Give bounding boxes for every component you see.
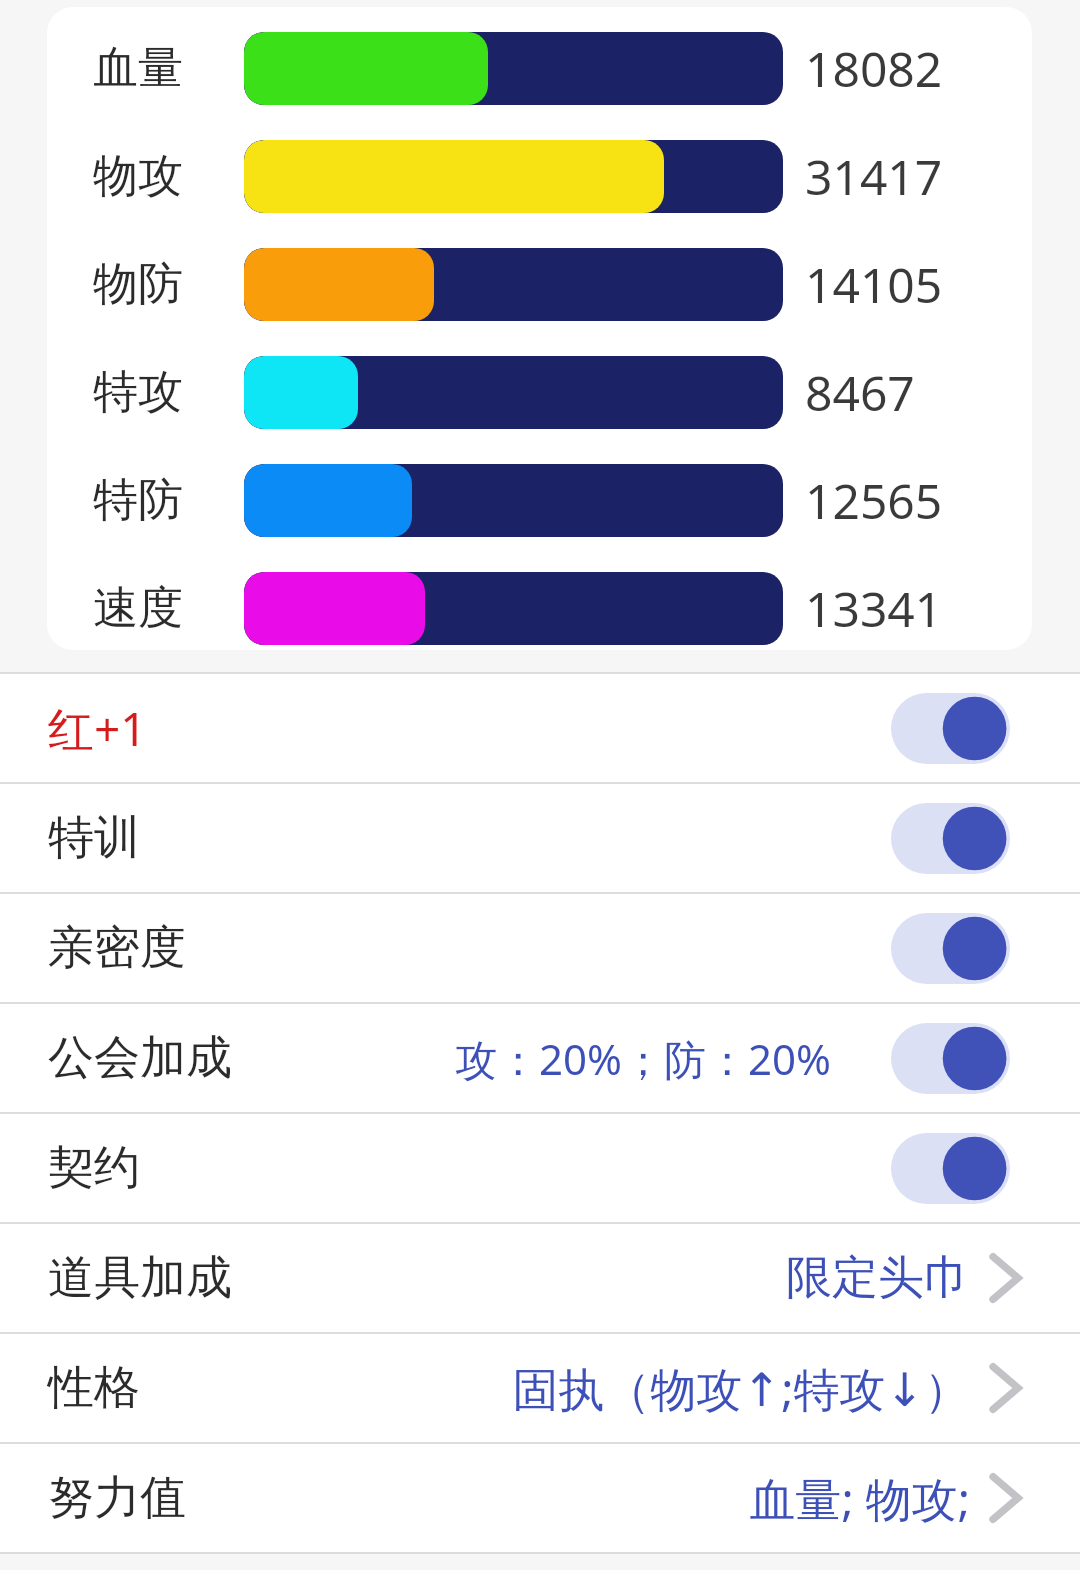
staticText: 亲密度: [48, 919, 186, 977]
staticText: 31417: [805, 144, 943, 209]
other: Open: [988, 1360, 1022, 1416]
staticText: 限定头巾: [786, 1249, 970, 1307]
staticText: 特训: [48, 809, 140, 867]
staticText: 18082: [805, 36, 943, 101]
staticText: 8467: [805, 360, 915, 425]
staticText: 公会加成: [48, 1029, 232, 1087]
button[interactable]: 性格: [0, 1334, 1080, 1442]
staticText: 12565: [805, 468, 943, 533]
staticText: 红+1: [48, 697, 147, 760]
staticText: 性格: [48, 1359, 140, 1417]
button[interactable]: Toggle: [891, 1022, 1010, 1095]
button[interactable]: 契约: [0, 1114, 1080, 1222]
button[interactable]: 公会加成: [0, 1004, 1080, 1112]
staticText: 固执（物攻↑;特攻↓）: [512, 1357, 970, 1420]
staticText: 血量; 物攻;: [749, 1467, 970, 1530]
staticText: 物攻: [93, 148, 183, 205]
button[interactable]: Toggle: [891, 802, 1010, 875]
staticText: 物防: [93, 256, 183, 313]
staticText: 14105: [805, 252, 943, 317]
button[interactable]: 亲密度: [0, 894, 1080, 1002]
button[interactable]: 红+1: [0, 674, 1080, 782]
staticText: 契约: [48, 1139, 140, 1197]
button[interactable]: 努力值: [0, 1444, 1080, 1552]
staticText: 血量: [93, 40, 183, 97]
other: Open: [988, 1470, 1022, 1526]
staticText: 努力值: [48, 1469, 186, 1527]
button[interactable]: Toggle: [891, 912, 1010, 985]
staticText: 攻：20%；防：20%: [455, 1030, 831, 1087]
button[interactable]: Toggle: [891, 1132, 1010, 1205]
staticText: 特攻: [93, 364, 183, 421]
other: Open: [988, 1250, 1022, 1306]
button[interactable]: 特训: [0, 784, 1080, 892]
button[interactable]: Toggle: [891, 692, 1010, 765]
button[interactable]: 道具加成: [0, 1224, 1080, 1332]
staticText: 13341: [805, 576, 943, 641]
staticText: 速度: [93, 580, 183, 637]
staticText: 道具加成: [48, 1249, 232, 1307]
staticText: 特防: [93, 472, 183, 529]
